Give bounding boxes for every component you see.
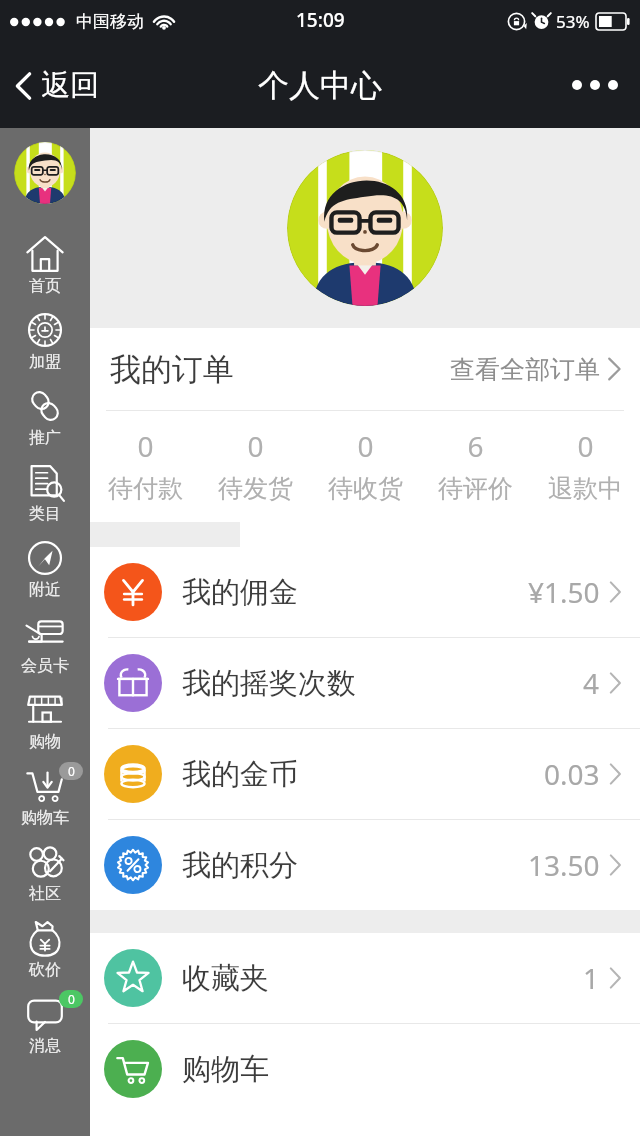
button[interactable]: 我的佣金 [90, 547, 640, 637]
staticText: 查看全部订单 [450, 354, 600, 385]
staticText: 6 [467, 427, 484, 465]
button[interactable]: 我的金币 [90, 729, 640, 819]
staticText: 个人中心 [258, 66, 382, 105]
button[interactable]: 返回 [0, 57, 115, 114]
staticText: 会员卡 [21, 656, 69, 676]
staticText: 首页 [29, 276, 61, 296]
staticText: 购物 [29, 732, 61, 752]
staticText: 推广 [29, 428, 61, 448]
staticText: ¥1.50 [528, 573, 600, 611]
staticText: 待评价 [438, 473, 513, 504]
staticText: 53% [556, 10, 590, 33]
staticText: 退款中 [548, 473, 623, 504]
staticText: 我的订单 [110, 350, 234, 389]
button[interactable]: 首页 [0, 226, 90, 302]
staticText: 4 [583, 664, 600, 702]
staticText: 消息 [29, 1036, 61, 1056]
staticText: 待付款 [108, 473, 183, 504]
staticText: 社区 [29, 884, 61, 904]
staticText: 砍价 [29, 960, 61, 980]
staticText: 我的积分 [182, 847, 298, 884]
button[interactable]: 0 [310, 427, 420, 504]
staticText: 1 [583, 959, 600, 997]
button[interactable]: 会员卡 [0, 606, 90, 682]
button[interactable]: 推广 [0, 378, 90, 454]
button[interactable]: 我的摇奖次数 [90, 638, 640, 728]
button[interactable]: 0 [90, 427, 200, 504]
button[interactable]: 0 [200, 427, 310, 504]
button[interactable]: User avatar [287, 150, 443, 306]
staticText: 13.50 [528, 846, 600, 884]
button[interactable]: 附近 [0, 530, 90, 606]
staticText: 0.03 [544, 755, 600, 793]
staticText: 加盟 [29, 352, 61, 372]
staticText: 0 [577, 427, 594, 465]
button[interactable]: Profile [14, 142, 76, 204]
staticText: 购物车 [182, 1051, 269, 1088]
button[interactable]: 6 [420, 427, 530, 504]
button[interactable]: 社区 [0, 834, 90, 910]
button[interactable]: 0 [0, 986, 90, 1062]
button[interactable]: 我的积分 [90, 820, 640, 910]
button[interactable]: 我的订单 [90, 328, 640, 410]
staticText: 附近 [29, 580, 61, 600]
button[interactable]: 类目 [0, 454, 90, 530]
staticText: 中国移动 [76, 11, 144, 32]
staticText: 0 [68, 991, 75, 1007]
button[interactable]: 0 [0, 758, 90, 834]
button[interactable]: 砍价 [0, 910, 90, 986]
button[interactable]: 收藏夹 [90, 933, 640, 1023]
staticText: 类目 [29, 504, 61, 524]
staticText: 0 [68, 763, 75, 779]
button[interactable]: 购物 [0, 682, 90, 758]
button[interactable]: 0 [530, 427, 640, 504]
staticText: 我的金币 [182, 756, 298, 793]
button[interactable]: 加盟 [0, 302, 90, 378]
staticText: 我的摇奖次数 [182, 665, 356, 702]
staticText: 0 [247, 427, 264, 465]
staticText: 待收货 [328, 473, 403, 504]
staticText: 15:09 [296, 7, 345, 33]
staticText: 我的佣金 [182, 574, 298, 611]
staticText: 0 [357, 427, 374, 465]
button[interactable]: 购物车 [90, 1024, 640, 1114]
button[interactable]: More options [550, 60, 640, 110]
staticText: 购物车 [21, 808, 69, 828]
staticText: 返回 [41, 67, 99, 104]
staticText: 收藏夹 [182, 960, 269, 997]
staticText: 0 [137, 427, 154, 465]
staticText: 待发货 [218, 473, 293, 504]
